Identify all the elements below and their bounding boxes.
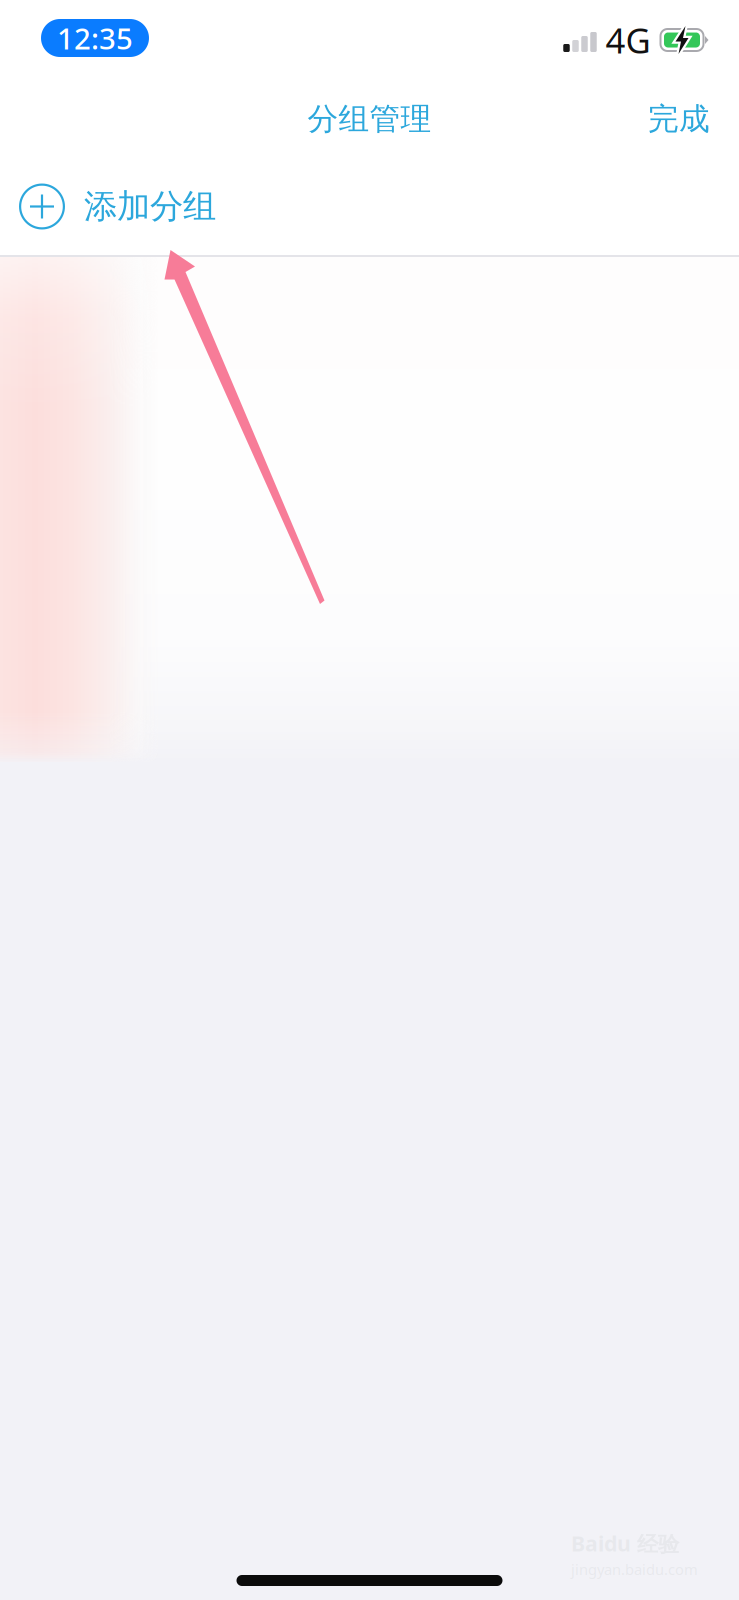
staticText: Baidu 经验	[571, 1529, 679, 1557]
staticText: 4G	[605, 17, 650, 63]
button[interactable]: 添加分组	[0, 158, 739, 255]
button[interactable]: 完成	[638, 91, 720, 147]
staticText: 分组管理	[307, 100, 431, 138]
staticText: 完成	[648, 100, 710, 138]
staticText: 12:35	[57, 18, 133, 57]
staticText: jingyan.baidu.com	[571, 1559, 698, 1579]
staticText: 添加分组	[84, 186, 216, 227]
